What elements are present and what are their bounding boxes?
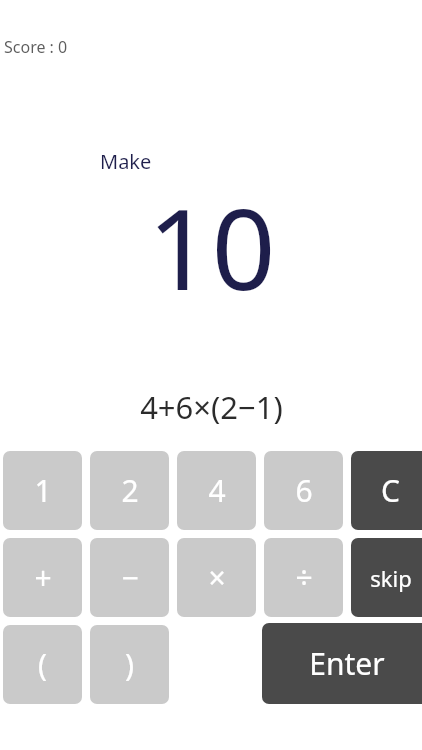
staticText: skip — [370, 563, 412, 593]
button[interactable]: skip — [351, 538, 422, 617]
staticText: 2 — [121, 470, 139, 511]
staticText: ( — [38, 644, 47, 685]
staticText: C — [381, 470, 400, 511]
button[interactable]: Enter — [262, 623, 422, 704]
button[interactable]: ( — [3, 625, 82, 704]
staticText: Score : 0 — [4, 36, 68, 58]
staticText: ÷ — [295, 557, 313, 598]
staticText: × — [208, 557, 226, 598]
button[interactable]: 6 — [264, 451, 343, 530]
staticText: − — [121, 557, 139, 598]
staticText: 4+6×(2−1) — [140, 386, 283, 428]
staticText: ) — [125, 644, 134, 685]
staticText: Enter — [309, 643, 385, 684]
staticText: 4 — [208, 470, 226, 511]
button[interactable]: − — [90, 538, 169, 617]
button[interactable]: C — [351, 451, 422, 530]
staticText: 10 — [147, 170, 276, 295]
button[interactable]: 2 — [90, 451, 169, 530]
button[interactable]: ) — [90, 625, 169, 704]
staticText: + — [34, 557, 52, 598]
button[interactable]: 4 — [177, 451, 256, 530]
button[interactable]: ÷ — [264, 538, 343, 617]
button[interactable]: + — [3, 538, 82, 617]
button[interactable]: Score : 0 — [2, 34, 70, 60]
staticText: 1 — [34, 470, 52, 511]
staticText: Make — [100, 148, 152, 175]
button[interactable]: 1 — [3, 451, 82, 530]
staticText: 6 — [295, 470, 313, 511]
button[interactable]: × — [177, 538, 256, 617]
